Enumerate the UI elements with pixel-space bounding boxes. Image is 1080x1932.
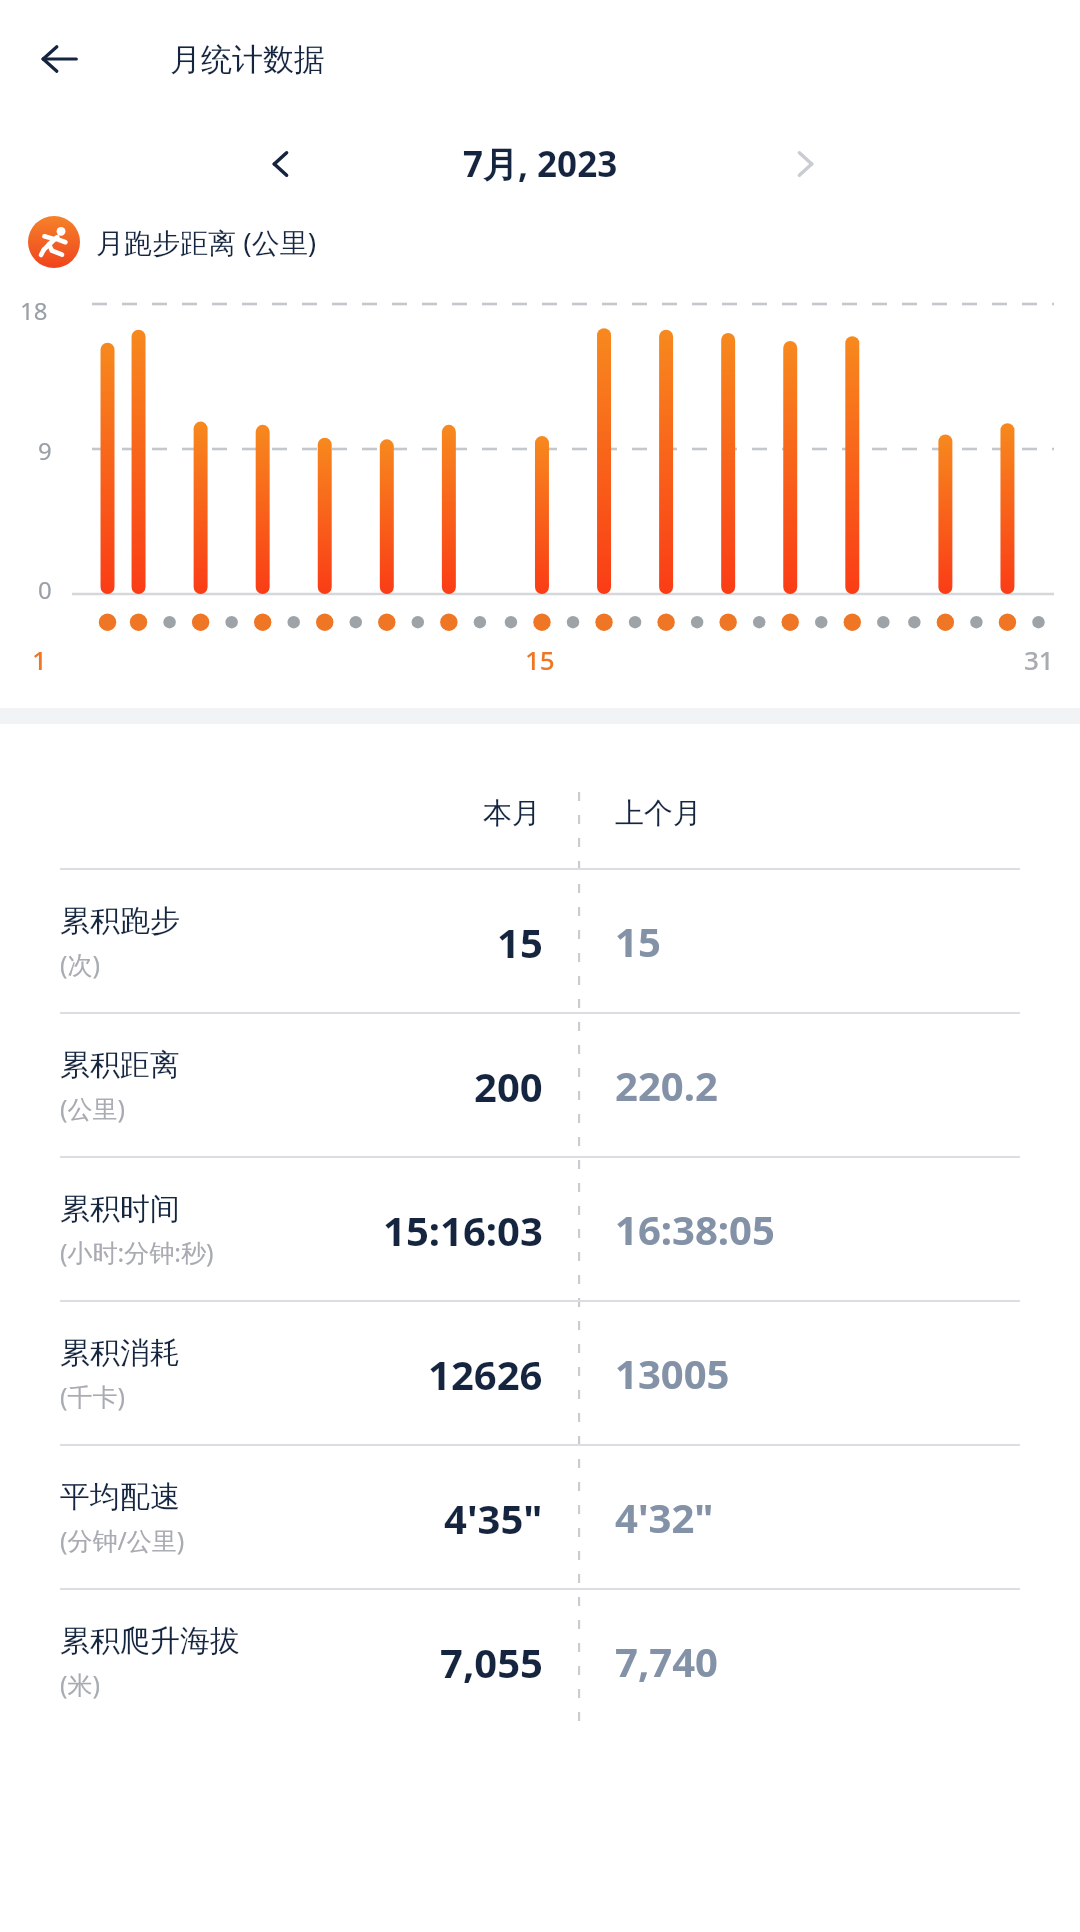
button[interactable]: 累积距离 [26,1014,1054,1156]
staticText: (小时:分钟:秒) [60,1235,214,1269]
staticText: 15:16:03 [383,1203,543,1257]
staticText: 18 [20,294,48,327]
staticText: 7月, 2023 [463,140,618,188]
staticText: 0 [38,573,52,606]
staticText: 12626 [428,1347,543,1401]
staticText: 累积时间 [60,1190,180,1228]
staticText: (米) [60,1667,101,1701]
staticText: 15 [497,915,543,969]
staticText: (分钟/公里) [60,1523,185,1557]
staticText: (千卡) [60,1379,126,1413]
staticText: 累积消耗 [60,1334,180,1372]
staticText: 累积跑步 [60,902,180,940]
staticText: 13005 [615,1346,730,1400]
button[interactable]: Next month [772,131,838,197]
staticText: 平均配速 [60,1478,180,1516]
staticText: 本月 [483,795,541,832]
button[interactable]: 累积爬升海拔 [26,1590,1054,1732]
staticText: 4'32" [615,1490,714,1544]
staticText: 月跑步距离 (公里) [96,223,317,261]
staticText: (公里) [60,1091,126,1125]
button[interactable]: 平均配速 [26,1446,1054,1588]
staticText: (次) [60,947,101,981]
staticText: 7,740 [615,1634,718,1688]
button[interactable]: 累积消耗 [26,1302,1054,1444]
button[interactable]: 累积时间 [26,1158,1054,1300]
button[interactable]: Previous month [248,131,314,197]
staticText: 15 [525,642,555,677]
staticText: 上个月 [615,795,702,832]
staticText: 16:38:05 [615,1202,775,1256]
button[interactable]: 月跑步距离 (公里) [28,216,1080,268]
staticText: 1 [32,642,47,677]
staticText: 累积距离 [60,1046,180,1084]
staticText: 累积爬升海拔 [60,1622,240,1660]
staticText: 200 [474,1059,543,1113]
button[interactable]: 累积跑步 [26,870,1054,1012]
staticText: 31 [1024,642,1054,677]
button[interactable]: Back [22,22,96,96]
staticText: 15 [615,914,661,968]
staticText: 4'35" [444,1491,543,1545]
staticText: 7,055 [440,1635,543,1689]
staticText: 220.2 [615,1058,718,1112]
staticText: 月统计数据 [170,40,325,79]
staticText: 9 [38,434,52,467]
